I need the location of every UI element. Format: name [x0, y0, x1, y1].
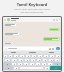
button[interactable]: Key	[43, 54, 49, 58]
button[interactable]: Key	[19, 54, 25, 58]
button[interactable]: Key	[24, 58, 30, 62]
button[interactable]	[3, 51, 23, 54]
button[interactable]: Space	[19, 66, 44, 70]
button[interactable]: Key	[54, 58, 60, 62]
button[interactable]: Symbols	[3, 66, 13, 70]
button[interactable]: Shift	[3, 62, 11, 66]
button[interactable]: Key	[3, 54, 8, 58]
button[interactable]	[23, 51, 42, 54]
button[interactable]: Key	[17, 62, 23, 66]
button[interactable]: Key	[44, 66, 50, 70]
button[interactable]	[42, 51, 61, 54]
button[interactable]	[43, 37, 60, 41]
staticText: Tamil Keyboard	[3, 2, 61, 7]
button[interactable]: Key	[23, 62, 29, 66]
button[interactable]: Key	[42, 58, 48, 62]
button[interactable]	[4, 32, 20, 36]
button[interactable]: Key	[55, 54, 61, 58]
button[interactable]: Backspace	[53, 62, 61, 66]
button[interactable]: Key	[31, 54, 37, 58]
button[interactable]: Key	[49, 54, 55, 58]
button[interactable]: Enter	[50, 66, 61, 70]
button[interactable]: Key	[4, 58, 11, 62]
button[interactable]: Key	[8, 54, 13, 58]
staticText: Type in Tamil easily with this simple an…	[3, 8, 61, 14]
button[interactable]	[4, 47, 55, 50]
button[interactable]: Key	[30, 58, 36, 62]
button[interactable]: Key	[35, 62, 41, 66]
button[interactable]: Key	[41, 62, 47, 66]
button[interactable]	[4, 23, 17, 27]
button[interactable]: Key	[37, 54, 43, 58]
button[interactable]: Send	[56, 47, 60, 50]
button[interactable]: Back	[3, 17, 61, 22]
button[interactable]: Key	[11, 62, 17, 66]
button[interactable]: Key	[18, 58, 24, 62]
button[interactable]: Key	[11, 58, 18, 62]
button[interactable]: Key	[36, 58, 42, 62]
button[interactable]	[49, 28, 60, 31]
button[interactable]: Key	[47, 62, 53, 66]
button[interactable]: Key	[13, 54, 19, 58]
button[interactable]: Key	[25, 54, 31, 58]
button[interactable]: Key	[29, 62, 35, 66]
button[interactable]: Key	[13, 66, 19, 70]
button[interactable]: Key	[48, 58, 54, 62]
button[interactable]	[4, 42, 13, 45]
